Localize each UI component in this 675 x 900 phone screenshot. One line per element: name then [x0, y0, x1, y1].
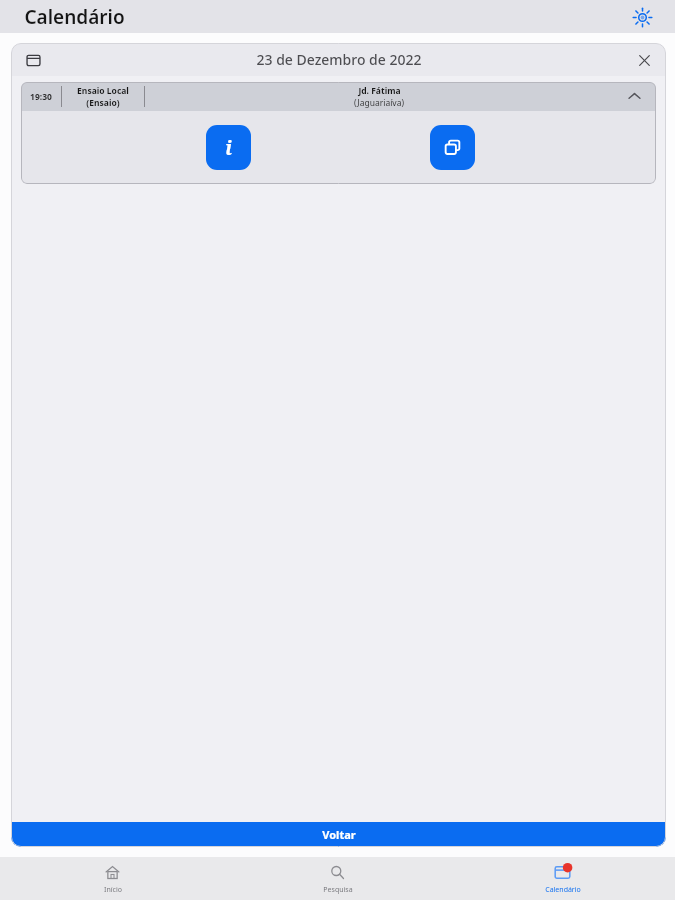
button[interactable]: Informações	[206, 125, 251, 170]
button[interactable]: Calendário	[19, 46, 47, 74]
button[interactable]: Recolher	[612, 82, 656, 111]
staticText: Jd. Fátima	[358, 85, 401, 97]
staticText: (Ensaio)	[86, 97, 120, 109]
staticText: Calendário	[545, 885, 581, 895]
button[interactable]: Brilho	[627, 2, 657, 32]
button[interactable]: Pesquisa	[225, 857, 450, 900]
staticText: (Jaguariaíva)	[354, 97, 404, 109]
button[interactable]: Voltar	[11, 822, 666, 847]
staticText: i	[225, 135, 232, 161]
staticText: 19:30	[30, 91, 52, 103]
staticText: 23 de Dezembro de 2022	[256, 50, 422, 69]
staticText: Pesquisa	[323, 885, 353, 895]
button[interactable]: Início	[0, 857, 225, 900]
button[interactable]: Duplicar	[430, 125, 475, 170]
button[interactable]: Calendário	[450, 857, 675, 900]
staticText: Voltar	[322, 827, 356, 842]
button[interactable]: 19:30	[21, 82, 656, 111]
staticText: Calendário	[24, 4, 125, 30]
staticText: Início	[104, 885, 122, 895]
button[interactable]: Fechar	[630, 46, 658, 74]
staticText: Ensaio Local	[77, 85, 129, 97]
